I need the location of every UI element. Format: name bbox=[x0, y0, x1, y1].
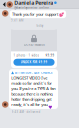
button[interactable]: UNLOCK FOR $9.99 bbox=[13, 59, 55, 66]
staticText: LONGEST VIDEO I've made so far and it's … bbox=[11, 75, 55, 107]
staticText: 9:43 AM · delivered bbox=[11, 110, 40, 114]
staticText: 1 photo · 1 video bbox=[13, 54, 39, 57]
staticText: Daniela Pereira bbox=[14, 0, 53, 6]
staticText: $9.99 bbox=[46, 54, 55, 57]
staticText: LOCKED MESSAGE bbox=[23, 43, 44, 46]
staticText: 9:41 AM bbox=[11, 19, 23, 22]
staticText: ATTENTION - LAST CHANCE bbox=[15, 71, 52, 74]
button[interactable]: Daniela Pereira bbox=[6, 0, 57, 10]
staticText: @danielapereira · online bbox=[14, 6, 49, 10]
staticText: Today bbox=[36, 24, 43, 28]
button[interactable]: Back bbox=[1, 0, 6, 9]
staticText: UNLOCK FOR $9.99 bbox=[20, 60, 47, 64]
staticText: Thank you for your support 💕 bbox=[12, 11, 64, 17]
